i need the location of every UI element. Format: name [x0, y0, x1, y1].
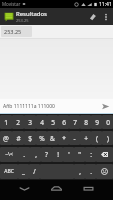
staticText: Añb 1111111a 111000 — [3, 103, 98, 110]
button[interactable]: App icon — [4, 12, 14, 22]
staticText: ( — [96, 134, 98, 143]
button[interactable]: / — [29, 164, 40, 179]
button[interactable]: ) — [102, 131, 113, 145]
staticText: _ — [22, 167, 25, 176]
button[interactable]: , — [74, 164, 85, 179]
button[interactable]: + — [80, 131, 91, 145]
button[interactable]: 1 — [0, 115, 12, 129]
staticText: 253.25 — [4, 28, 22, 35]
staticText: , — [79, 167, 81, 176]
button[interactable]: $ — [24, 131, 36, 145]
button[interactable]: - — [69, 131, 80, 145]
button[interactable]: * — [58, 131, 69, 145]
button[interactable]: _ — [18, 164, 29, 179]
staticText: 7 — [73, 118, 77, 127]
button[interactable]: 4 — [36, 115, 47, 129]
button[interactable]: 253.25 — [1, 26, 32, 37]
staticText: " — [78, 150, 81, 159]
button[interactable]: More options — [100, 11, 112, 23]
button[interactable]: ~\< — [0, 147, 18, 162]
staticText: - — [73, 134, 76, 143]
staticText: . — [23, 150, 25, 159]
button[interactable]: Back — [17, 181, 31, 195]
button[interactable]: ' — [63, 147, 74, 162]
staticText: 5 — [51, 118, 55, 127]
staticText: & — [50, 134, 55, 143]
button[interactable]: 9 — [91, 115, 102, 129]
staticText: 253.25 — [16, 18, 29, 23]
staticText: $ — [28, 134, 32, 143]
staticText: 3 — [28, 118, 32, 127]
button[interactable]: : — [85, 147, 96, 162]
staticText: ' — [68, 150, 70, 159]
button[interactable]: ABC — [0, 164, 18, 179]
button[interactable]: @ — [0, 131, 12, 145]
button[interactable]: , — [30, 147, 41, 162]
button[interactable]: ? — [41, 147, 52, 162]
staticText: Resultados — [16, 10, 47, 18]
button[interactable]: ! — [52, 147, 63, 162]
staticText: ! — [57, 150, 59, 159]
button[interactable]: Recents — [81, 181, 95, 195]
button[interactable]: % — [36, 131, 47, 145]
staticText: # — [16, 134, 21, 143]
staticText: 6 — [62, 118, 66, 127]
button[interactable]: Emoji — [96, 164, 113, 179]
button[interactable]: & — [47, 131, 58, 145]
staticText: Movistar — [2, 1, 21, 7]
button[interactable]: Home — [49, 181, 63, 195]
staticText: 1 — [4, 118, 8, 127]
staticText: / — [33, 167, 36, 176]
staticText: , — [35, 150, 37, 159]
button[interactable]: . — [18, 147, 30, 162]
staticText: ? — [45, 150, 48, 159]
button[interactable]: 0 — [102, 115, 113, 129]
button[interactable]: 3 — [24, 115, 36, 129]
staticText: * — [62, 134, 66, 143]
staticText: : — [90, 150, 92, 159]
staticText: ABC — [4, 168, 14, 175]
button[interactable]: Send — [98, 99, 112, 113]
staticText: ~\< — [5, 151, 13, 158]
button[interactable]: 6 — [58, 115, 69, 129]
button[interactable]: Backspace — [96, 147, 113, 162]
staticText: 2 — [16, 118, 20, 127]
button[interactable]: 5 — [47, 115, 58, 129]
button[interactable]: 7 — [69, 115, 80, 129]
staticText: ) — [107, 134, 109, 143]
button[interactable]: 2 — [12, 115, 24, 129]
button[interactable]: Erase — [86, 10, 100, 24]
button[interactable]: . — [85, 164, 96, 179]
button[interactable]: # — [12, 131, 24, 145]
staticText: 9 — [95, 118, 99, 127]
staticText: + — [84, 134, 88, 143]
staticText: 8 — [84, 118, 88, 127]
staticText: 11:41 — [99, 1, 112, 8]
staticText: 0 — [106, 118, 110, 127]
button[interactable]: 8 — [80, 115, 91, 129]
staticText: 4 — [40, 118, 44, 127]
staticText: . — [90, 167, 92, 176]
staticText: @ — [3, 134, 9, 143]
staticText: % — [39, 134, 45, 143]
button[interactable]: " — [74, 147, 85, 162]
button[interactable]: ( — [91, 131, 102, 145]
